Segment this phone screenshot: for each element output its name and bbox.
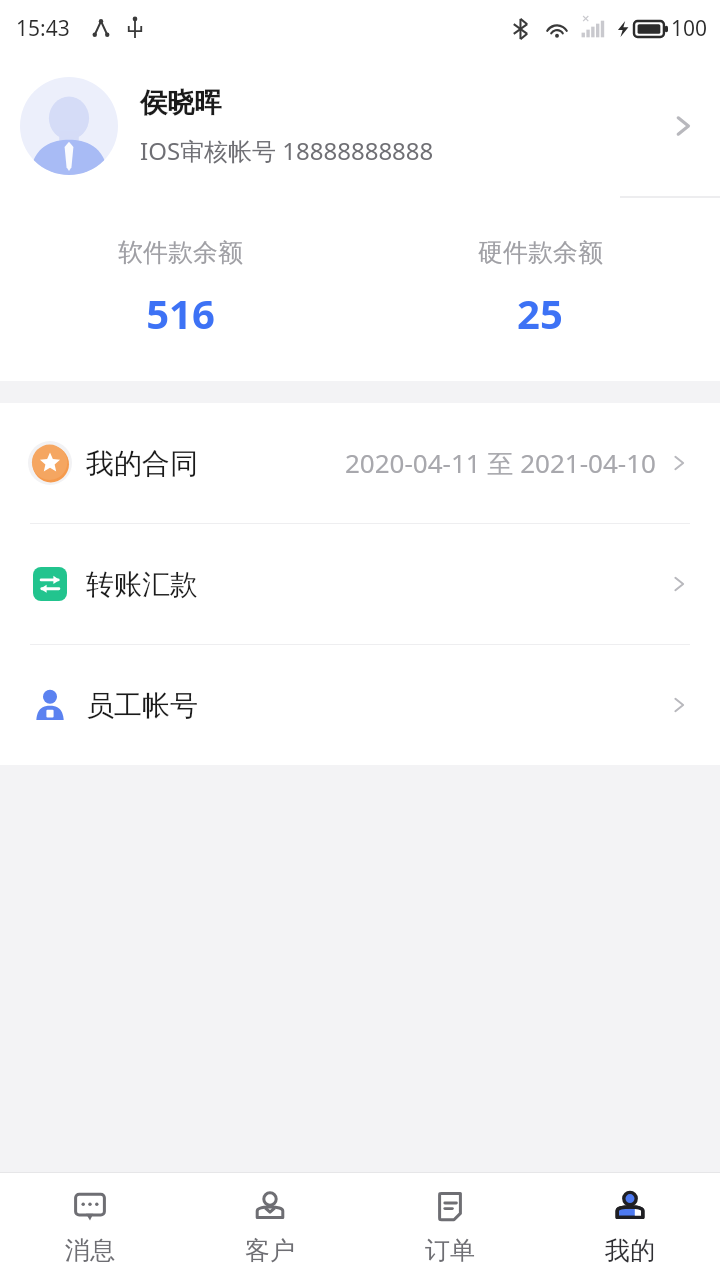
staticText: 软件款余额 (118, 237, 243, 268)
staticText: 员工帐号 (86, 688, 198, 723)
staticText: 516 (146, 286, 215, 340)
button[interactable]: 软件款余额 (0, 196, 360, 381)
staticText: 订单 (425, 1235, 475, 1266)
button[interactable]: 硬件款余额 (360, 196, 720, 381)
button[interactable]: 我的 (540, 1173, 720, 1280)
button[interactable]: 转账汇款 (0, 524, 720, 644)
staticText: 客户 (245, 1235, 295, 1266)
staticText: 15:43 (16, 14, 70, 43)
staticText: 侯晓晖 (140, 86, 221, 120)
button[interactable]: 员工帐号 (0, 645, 720, 765)
button[interactable]: 消息 (0, 1173, 180, 1280)
staticText: 转账汇款 (86, 567, 198, 602)
staticText: 我的 (605, 1235, 655, 1266)
staticText: 我的合同 (86, 446, 198, 481)
button[interactable]: 我的合同 (0, 403, 720, 523)
staticText: 25 (517, 286, 563, 340)
staticText: 硬件款余额 (478, 237, 603, 268)
staticText: 2020-04-11 至 2021-04-10 (345, 445, 656, 481)
staticText: 消息 (65, 1235, 115, 1266)
staticText: IOS审核帐号 18888888888 (140, 134, 434, 167)
button[interactable]: 客户 (180, 1173, 360, 1280)
button[interactable]: 侯晓晖 (0, 56, 720, 196)
button[interactable]: 订单 (360, 1173, 540, 1280)
staticText: 100 (671, 14, 708, 43)
